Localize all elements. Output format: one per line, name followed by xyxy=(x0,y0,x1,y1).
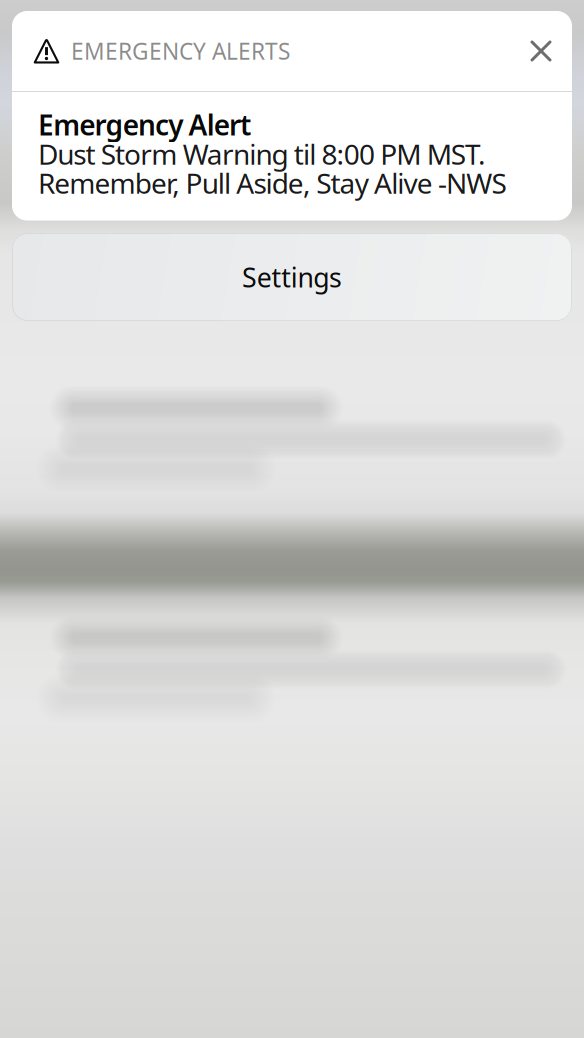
staticText: Emergency Alert xyxy=(38,106,251,143)
staticText: EMERGENCY ALERTS xyxy=(71,36,290,66)
staticText: Settings xyxy=(242,259,342,295)
staticText: Dust Storm Warning til 8:00 PM MST. xyxy=(38,135,486,172)
button[interactable]: Settings xyxy=(12,233,572,321)
button[interactable]: Close xyxy=(510,20,572,82)
staticText: Remember, Pull Aside, Stay Alive -NWS xyxy=(38,164,506,202)
